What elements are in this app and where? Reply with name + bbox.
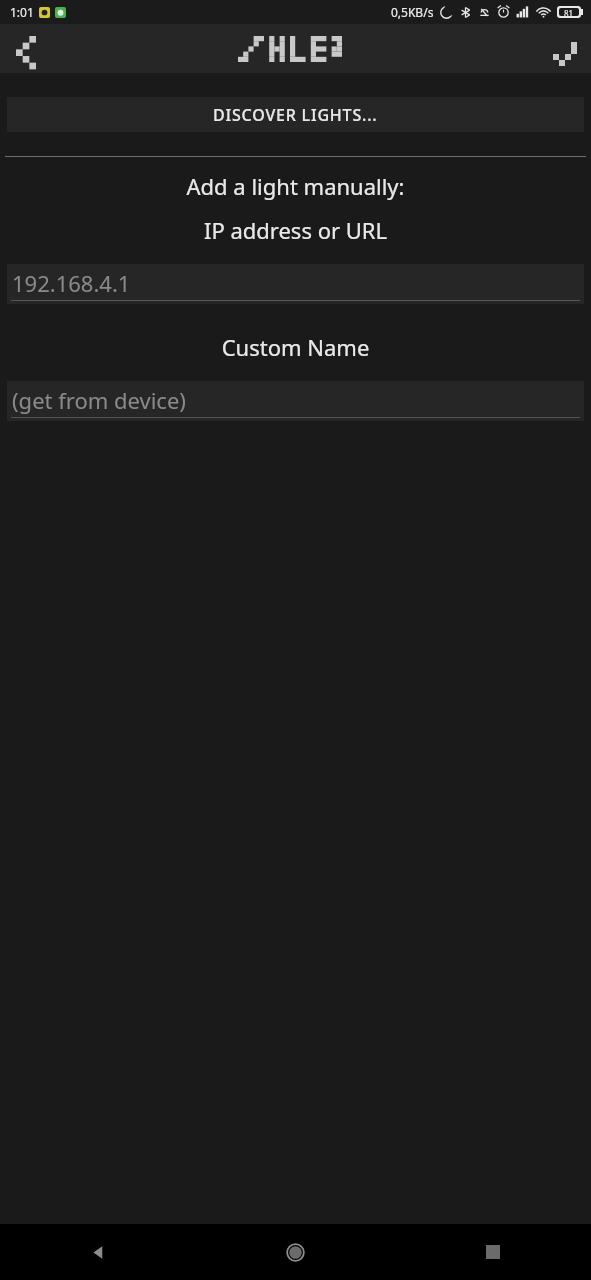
staticText: DISCOVER LIGHTS... <box>213 104 378 126</box>
staticText: Custom Name <box>0 332 591 362</box>
button[interactable]: (get from device) <box>7 381 584 421</box>
staticText: Add a light manually: <box>0 171 591 201</box>
button[interactable]: Back <box>0 1224 197 1280</box>
staticText: 0,5KB/s <box>391 4 434 20</box>
button[interactable]: Confirm <box>539 24 591 73</box>
button[interactable]: Home <box>197 1224 394 1280</box>
button[interactable]: Back <box>0 24 52 73</box>
button[interactable]: Recent apps <box>394 1224 591 1280</box>
staticText: 192.168.4.1 <box>12 268 131 298</box>
staticText: 1:01 <box>10 4 34 20</box>
staticText: 81 <box>564 8 574 16</box>
staticText: (get from device) <box>12 385 186 415</box>
button[interactable]: 192.168.4.1 <box>7 264 584 304</box>
button[interactable]: DISCOVER LIGHTS... <box>7 97 584 132</box>
staticText: IP address or URL <box>0 215 591 245</box>
